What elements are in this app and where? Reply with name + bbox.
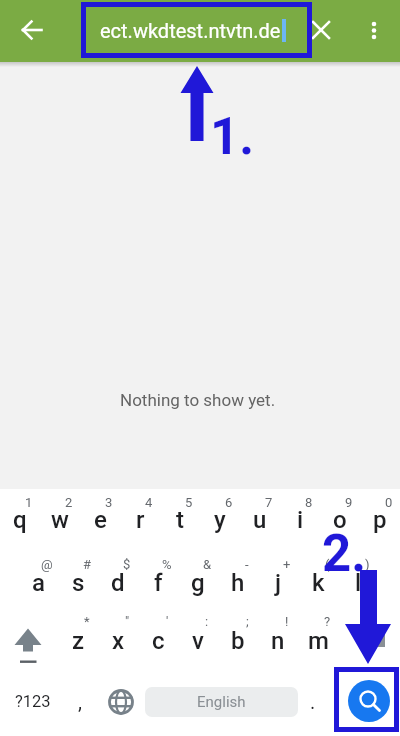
button[interactable]: y [200,488,240,549]
staticText: y [214,506,226,534]
button[interactable]: f [138,549,178,610]
button[interactable] [350,6,398,54]
button[interactable]: , [60,670,100,732]
staticText: 8 [305,495,313,510]
staticText: " [125,614,130,629]
button[interactable]: . [295,670,331,732]
button[interactable] [100,670,144,732]
button[interactable]: u [240,488,280,549]
staticText: x [112,627,125,655]
button[interactable]: k [298,549,338,610]
staticText: 1. [210,107,255,167]
staticText: 6 [225,495,233,510]
staticText: m [308,627,329,655]
staticText: i [297,506,304,534]
button[interactable]: b [218,610,258,670]
button[interactable]: s [58,549,98,610]
button[interactable]: x [98,610,138,670]
staticText: v [192,627,204,655]
button[interactable]: English [145,687,298,717]
staticText: ( [325,557,330,572]
button[interactable]: q [0,488,40,549]
staticText: 3 [105,495,113,510]
staticText: u [253,506,267,534]
staticText: , [78,690,82,713]
staticText: ect.wkdtest.ntvtn.de [100,19,281,42]
staticText: ! [285,614,289,629]
staticText: r [136,506,145,534]
staticText: # [83,557,92,572]
staticText: c [152,627,165,655]
staticText: w [51,506,69,534]
staticText: + [283,557,291,572]
button[interactable]: w [40,488,80,549]
button[interactable] [6,610,56,670]
staticText: 0 [385,495,393,510]
button[interactable]: p [360,488,400,549]
staticText: : [205,614,209,629]
button[interactable] [297,6,345,54]
staticText: 4 [145,495,153,510]
staticText: ; [246,614,249,629]
button[interactable]: o [320,488,360,549]
staticText: l [355,569,362,597]
staticText: $ [123,557,131,572]
button[interactable]: h [218,549,258,610]
staticText: z [72,627,85,655]
staticText: . [310,690,316,713]
staticText: - [245,557,249,572]
staticText: s [72,569,85,597]
staticText: a [32,569,45,597]
staticText: 1 [25,495,33,510]
staticText: h [231,569,245,597]
button[interactable]: ?123 [10,670,56,732]
button[interactable]: g [178,549,218,610]
button[interactable]: r [120,488,160,549]
button[interactable]: t [160,488,200,549]
staticText: ? [324,614,331,629]
button[interactable] [348,680,390,722]
button[interactable] [344,610,394,670]
button[interactable]: j [258,549,298,610]
staticText: English [197,693,246,711]
staticText: 7 [265,495,273,510]
staticText: t [176,506,184,534]
button[interactable]: i [280,488,320,549]
staticText: 9 [345,495,353,510]
button[interactable]: d [98,549,138,610]
button[interactable]: e [80,488,120,549]
button[interactable]: m [298,610,338,670]
staticText: 2 [65,495,73,510]
button[interactable]: ect.wkdtest.ntvtn.de [81,6,305,54]
staticText: @ [41,557,53,572]
staticText: * [84,614,90,629]
staticText: ?123 [15,692,51,711]
staticText: b [231,627,245,655]
staticText: & [203,557,212,572]
staticText: Nothing to show yet. [120,390,276,410]
staticText: j [275,569,282,597]
button[interactable]: c [138,610,178,670]
button[interactable]: z [58,610,98,670]
button[interactable]: v [178,610,218,670]
staticText: k [312,569,325,597]
staticText: f [154,569,163,597]
button[interactable]: a [18,549,58,610]
staticText: % [162,557,172,572]
staticText: o [333,506,347,534]
staticText: ) [365,557,370,572]
staticText: p [373,506,387,534]
staticText: g [191,569,205,597]
staticText: ' [166,614,169,629]
button[interactable] [8,6,56,54]
button[interactable]: l [338,549,378,610]
staticText: 2. [322,524,367,584]
staticText: n [271,627,285,655]
staticText: 5 [185,495,193,510]
staticText: e [94,506,107,534]
staticText: d [111,569,125,597]
button[interactable]: n [258,610,298,670]
staticText: q [13,506,27,534]
